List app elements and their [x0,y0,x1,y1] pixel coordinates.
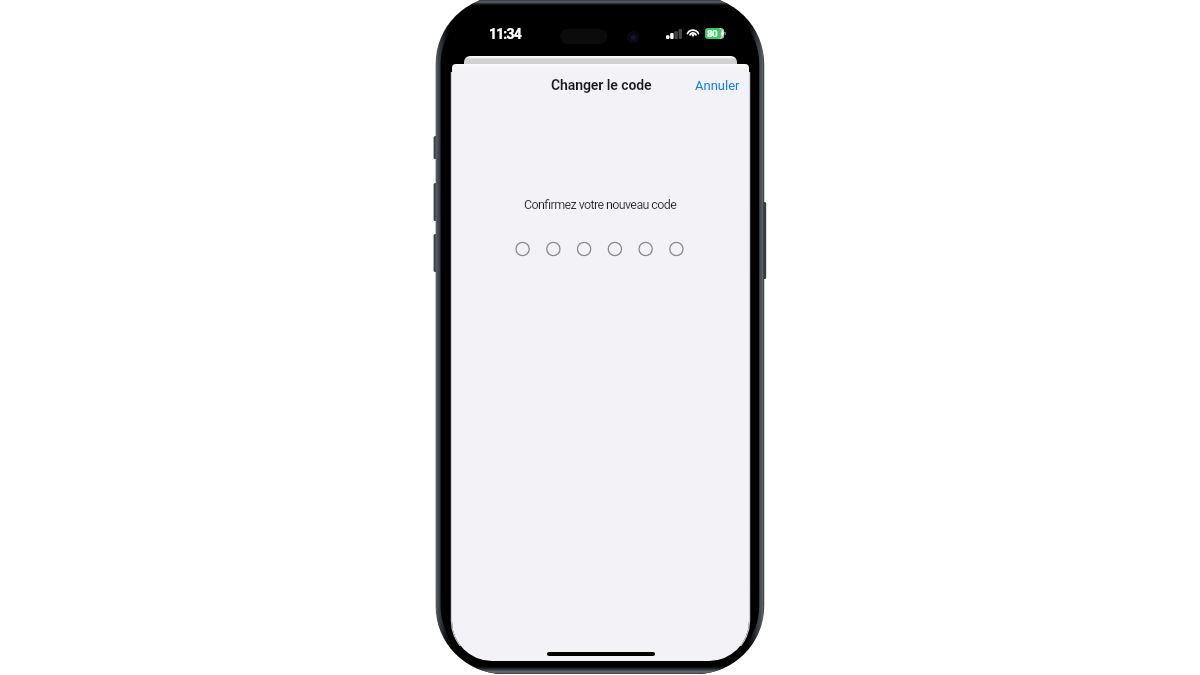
staticText: Confirmez votre nouveau code [524,197,677,212]
button[interactable]: Annuler [695,78,740,93]
staticText: 11:34 [489,26,521,42]
button[interactable]: Code entry [514,241,687,257]
staticText: Changer le code [551,77,652,93]
staticText: Annuler [695,78,740,93]
staticText: 80 [707,28,718,39]
button[interactable]: Changer le code [551,77,652,93]
